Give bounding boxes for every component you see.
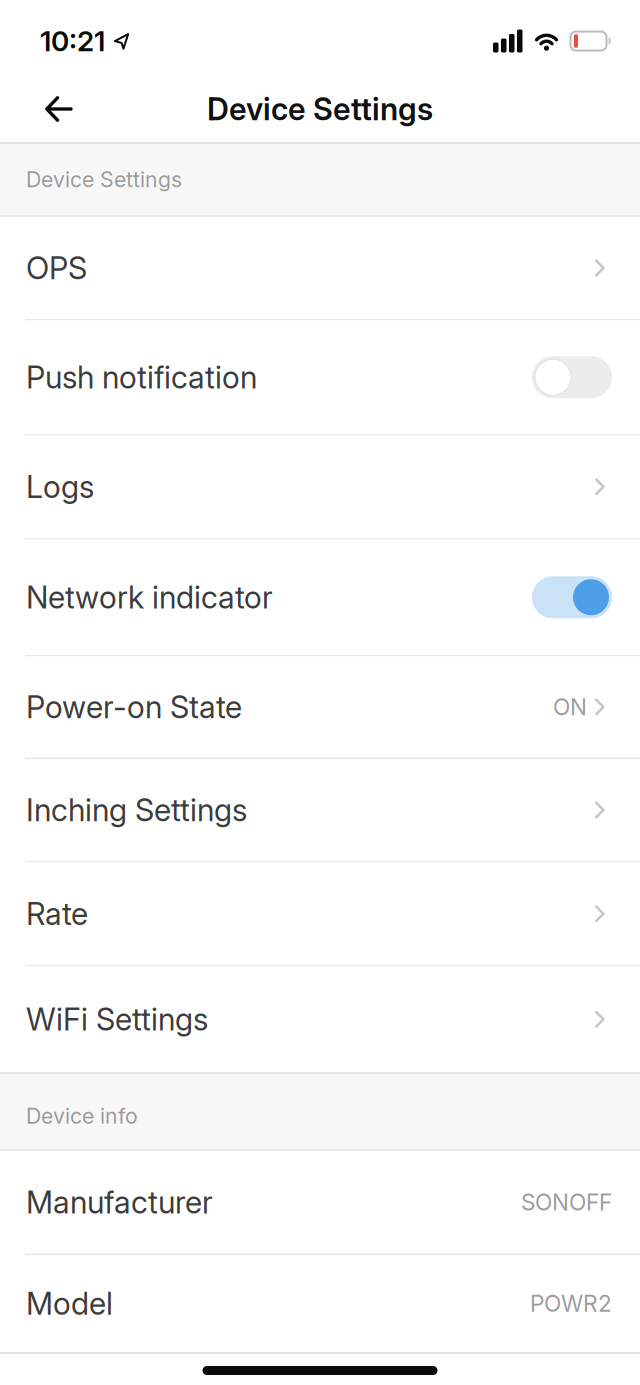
- staticText: ON: [553, 694, 587, 720]
- staticText: Inching Settings: [26, 792, 247, 828]
- button[interactable]: Rate: [0, 862, 640, 965]
- button[interactable]: Network indicator: [532, 576, 612, 618]
- staticText: WiFi Settings: [26, 1001, 208, 1037]
- staticText: Push notification: [26, 359, 257, 395]
- staticText: Network indicator: [26, 579, 273, 615]
- staticText: Rate: [26, 896, 88, 932]
- staticText: Device Settings: [207, 91, 433, 127]
- staticText: Device Settings: [26, 167, 182, 192]
- staticText: Device info: [26, 1103, 138, 1129]
- button[interactable]: Back: [45, 96, 73, 122]
- staticText: SONOFF: [521, 1189, 612, 1216]
- button[interactable]: Logs: [0, 435, 640, 538]
- button[interactable]: Power-on State: [0, 656, 640, 757]
- staticText: 10:21: [40, 24, 105, 57]
- staticText: Model: [26, 1285, 113, 1322]
- staticText: OPS: [26, 250, 87, 286]
- staticText: Logs: [26, 469, 94, 505]
- button[interactable]: Push notification: [532, 356, 612, 398]
- button[interactable]: OPS: [0, 217, 640, 319]
- staticText: Manufacturer: [26, 1184, 213, 1220]
- staticText: POWR2: [530, 1290, 612, 1317]
- button[interactable]: WiFi Settings: [0, 966, 640, 1072]
- button[interactable]: Inching Settings: [0, 759, 640, 861]
- staticText: Power-on State: [26, 689, 242, 725]
